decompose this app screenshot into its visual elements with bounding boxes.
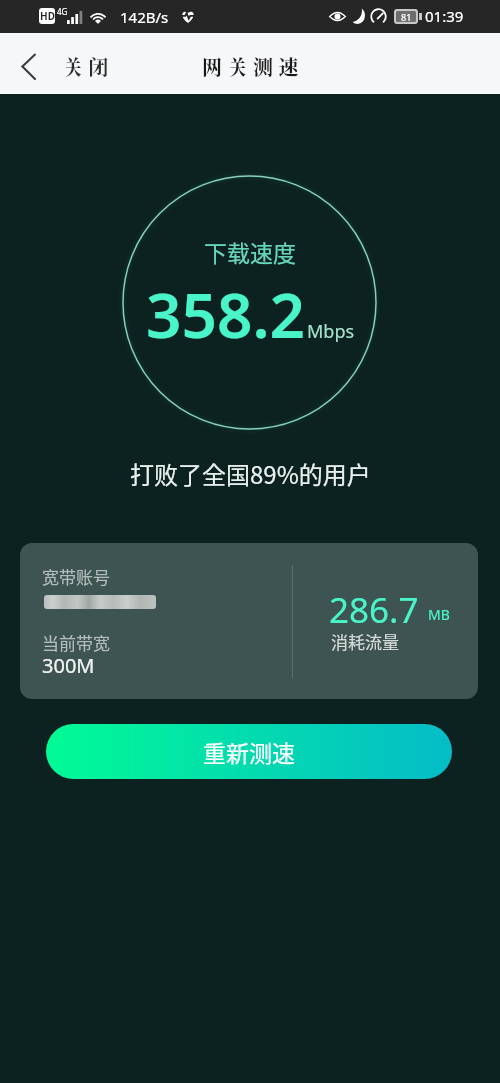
staticText: 4G xyxy=(57,6,68,17)
staticText: 重新测速 xyxy=(203,735,295,768)
other: Back xyxy=(14,36,44,97)
staticText: 网关测速 xyxy=(202,52,304,81)
staticText: 142B/s xyxy=(120,7,169,27)
button[interactable]: Back xyxy=(0,36,114,97)
button[interactable]: 重新测速 xyxy=(46,724,452,779)
staticText: 358.2 xyxy=(146,272,305,356)
staticText: 消耗流量 xyxy=(331,629,399,654)
staticText: 宽带账号 xyxy=(42,564,110,589)
staticText: HD xyxy=(40,9,55,23)
staticText: 打败了全国89%的用户 xyxy=(130,456,371,491)
staticText: 关闭 xyxy=(63,52,114,81)
staticText: Mbps xyxy=(307,319,355,344)
staticText: MB xyxy=(428,605,450,624)
staticText: 300M xyxy=(42,652,95,679)
staticText: 01:39 xyxy=(425,6,464,26)
staticText: 81 xyxy=(401,11,412,22)
staticText: 当前带宽 xyxy=(42,630,110,655)
staticText: 下载速度 xyxy=(204,235,296,268)
staticText: 286.7 xyxy=(329,586,419,634)
